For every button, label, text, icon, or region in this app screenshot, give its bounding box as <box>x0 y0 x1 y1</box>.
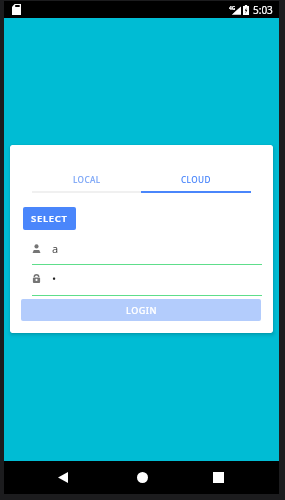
button[interactable]: CLOUD <box>141 145 251 193</box>
staticText: SELECT <box>31 212 68 225</box>
button[interactable]: LOGIN <box>21 299 261 321</box>
staticText: LOGIN <box>126 304 157 316</box>
staticText: LOCAL <box>73 174 101 185</box>
button[interactable]: SELECT <box>23 207 76 230</box>
button[interactable]: LOCAL <box>32 145 141 193</box>
staticText: a <box>52 241 59 256</box>
staticText: 4G <box>229 5 236 12</box>
staticText: CLOUD <box>181 174 211 185</box>
staticText: • <box>52 271 57 286</box>
button[interactable]: Recent apps <box>203 462 233 492</box>
staticText: 5:03 <box>253 3 273 17</box>
button[interactable]: Back <box>48 462 78 492</box>
button[interactable]: Home <box>127 462 157 492</box>
